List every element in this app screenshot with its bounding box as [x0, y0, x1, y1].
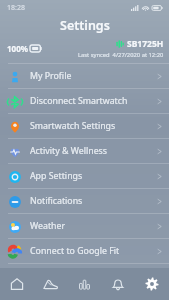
- button[interactable]: Smartwatch Settings: [0, 114, 169, 138]
- button[interactable]: Statistics: [67, 268, 101, 300]
- staticText: Activity & Wellness: [30, 145, 157, 157]
- button[interactable]: Connect to Google Fit: [0, 239, 169, 263]
- staticText: Smartwatch Settings: [30, 120, 157, 132]
- button[interactable]: Weather: [0, 214, 169, 238]
- button[interactable]: Settings: [135, 268, 169, 300]
- button[interactable]: App Settings: [0, 164, 169, 188]
- staticText: SB1725H: [127, 38, 164, 50]
- staticText: 100%: [7, 43, 28, 54]
- staticText: App Settings: [30, 170, 157, 182]
- staticText: My Profile: [30, 70, 157, 82]
- button[interactable]: Notifications: [0, 189, 169, 213]
- staticText: Connect to Google Fit: [30, 245, 157, 257]
- button[interactable]: My Profile: [0, 64, 169, 88]
- staticText: Settings: [60, 17, 110, 34]
- staticText: Weather: [30, 220, 157, 232]
- button[interactable]: Activity: [33, 268, 67, 300]
- button[interactable]: Home: [0, 268, 33, 300]
- staticText: 18:28: [7, 3, 25, 13]
- staticText: Disconnect Smartwatch: [30, 95, 157, 107]
- button[interactable]: Activity & Wellness: [0, 139, 169, 163]
- staticText: Last synced 4/27/2020 at 12:20: [78, 51, 164, 59]
- button[interactable]: Alarms: [101, 268, 135, 300]
- button[interactable]: Disconnect Smartwatch: [0, 89, 169, 113]
- staticText: Notifications: [30, 195, 157, 207]
